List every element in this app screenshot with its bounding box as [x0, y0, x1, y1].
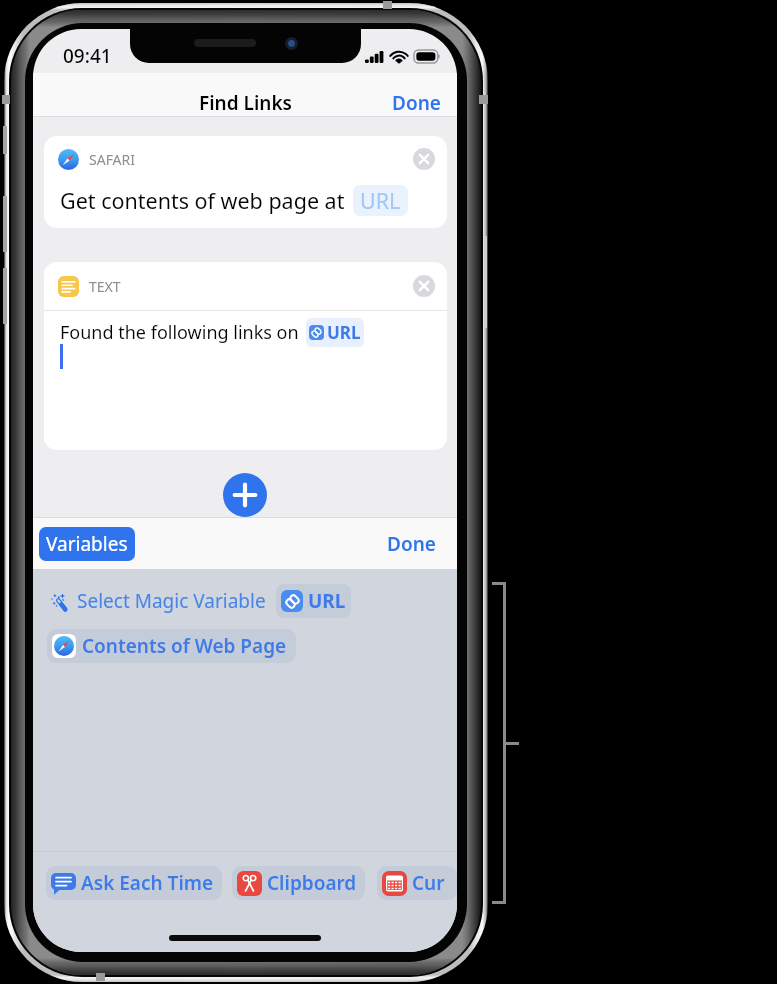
staticText: Select Magic Variable: [77, 588, 266, 614]
staticText: Done: [387, 531, 436, 557]
button[interactable]: Current Date: [377, 866, 457, 900]
button[interactable]: Done: [366, 523, 457, 565]
staticText: Ask Each Time: [81, 870, 214, 896]
button[interactable]: Remove action: [413, 275, 435, 297]
staticText: URL: [308, 588, 346, 614]
button[interactable]: Remove action: [413, 148, 435, 170]
staticText: TEXT: [89, 277, 121, 296]
button[interactable]: URL: [306, 318, 364, 347]
button[interactable]: TEXT: [44, 262, 447, 450]
button[interactable]: Ask Each Time: [46, 866, 222, 900]
button[interactable]: Variables: [39, 527, 135, 561]
button[interactable]: Done: [376, 82, 457, 124]
staticText: Contents of Web Page: [82, 633, 287, 659]
staticText: Done: [392, 90, 441, 116]
button[interactable]: SAFARI: [44, 136, 447, 228]
staticText: Variables: [46, 531, 128, 557]
staticText: 09:41: [63, 43, 112, 69]
button[interactable]: Add action: [223, 473, 267, 517]
staticText: URL: [327, 321, 361, 344]
button[interactable]: Select Magic Variable: [48, 584, 351, 618]
staticText: Find Links: [199, 90, 292, 116]
button[interactable]: Clipboard: [232, 866, 365, 900]
staticText: Get contents of web page at: [60, 186, 345, 215]
button[interactable]: URL: [276, 584, 351, 618]
staticText: SAFARI: [89, 150, 136, 169]
staticText: Current Date: [412, 870, 449, 896]
button[interactable]: Contents of Web Page: [47, 629, 296, 663]
staticText: Found the following links on: [60, 320, 299, 345]
button[interactable]: URL: [353, 185, 408, 216]
staticText: URL: [360, 186, 401, 215]
staticText: Clipboard: [267, 870, 357, 896]
